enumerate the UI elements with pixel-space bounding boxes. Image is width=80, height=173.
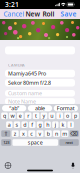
staticText: ⌫ bbox=[70, 131, 78, 137]
staticText: Sekor 80mm f/2.8 bbox=[8, 79, 51, 86]
button[interactable]: c bbox=[28, 130, 35, 137]
button[interactable]: b bbox=[45, 130, 52, 137]
staticText: Note Name bbox=[8, 98, 36, 105]
button[interactable]: 123 bbox=[1, 139, 11, 146]
staticText: q bbox=[3, 112, 6, 119]
staticText: x bbox=[22, 130, 25, 137]
button[interactable]: next bbox=[59, 139, 79, 146]
button[interactable]: r bbox=[25, 112, 31, 119]
button[interactable]: Note Name bbox=[5, 98, 75, 105]
staticText: Cancel bbox=[3, 10, 24, 18]
staticText: Custom name bbox=[8, 90, 42, 97]
staticText: able bbox=[35, 105, 45, 112]
staticText: o bbox=[66, 112, 69, 119]
button[interactable]: ⇧ bbox=[1, 130, 10, 137]
staticText: Save bbox=[60, 10, 76, 18]
button[interactable]: m bbox=[61, 130, 68, 137]
button[interactable]: Save bbox=[57, 9, 80, 19]
button[interactable]: u bbox=[48, 112, 55, 119]
button[interactable]: a bbox=[6, 121, 12, 128]
staticText: Mamiya645 Pro bbox=[8, 70, 46, 77]
staticText: k bbox=[61, 121, 64, 128]
button[interactable]: Sekor 80mm f/2.8 bbox=[5, 79, 75, 86]
staticText: 123 bbox=[3, 140, 9, 145]
button[interactable]: e bbox=[17, 112, 24, 119]
staticText: next bbox=[66, 140, 73, 145]
button[interactable]: f bbox=[29, 121, 35, 128]
button[interactable]: w bbox=[9, 112, 16, 119]
button[interactable]: n bbox=[53, 130, 60, 137]
button[interactable]: t bbox=[33, 112, 39, 119]
button[interactable]: l bbox=[67, 121, 74, 128]
button[interactable]: o bbox=[64, 112, 71, 119]
staticText: t bbox=[35, 112, 37, 119]
staticText: f bbox=[31, 121, 33, 128]
button[interactable]: q bbox=[1, 112, 8, 119]
staticText: i bbox=[59, 112, 60, 119]
button[interactable]: space bbox=[12, 139, 58, 146]
button[interactable]: i bbox=[56, 112, 63, 119]
button[interactable]: Switch keyboard bbox=[2, 159, 14, 171]
staticText: e bbox=[19, 112, 22, 119]
staticText: z bbox=[14, 130, 17, 137]
button[interactable]: k bbox=[60, 121, 66, 128]
staticText: space bbox=[28, 139, 43, 146]
button[interactable]: Dictate bbox=[68, 159, 78, 172]
button[interactable]: ⌫ bbox=[70, 130, 79, 137]
staticText: v bbox=[38, 130, 41, 137]
button[interactable]: “ab” bbox=[2, 105, 26, 111]
button[interactable]: Custom name bbox=[5, 90, 75, 96]
button[interactable]: s bbox=[14, 121, 20, 128]
button[interactable]: g bbox=[37, 121, 43, 128]
button[interactable]: x bbox=[20, 130, 27, 137]
button[interactable]: z bbox=[12, 130, 19, 137]
button[interactable]: p bbox=[72, 112, 79, 119]
button[interactable]: Mamiya645 Pro bbox=[5, 70, 75, 77]
staticText: r bbox=[27, 112, 29, 119]
button[interactable]: y bbox=[41, 112, 47, 119]
staticText: j bbox=[55, 121, 56, 128]
button[interactable]: h bbox=[44, 121, 51, 128]
staticText: a bbox=[8, 121, 11, 128]
staticText: CAMERA bbox=[8, 62, 25, 68]
staticText: c bbox=[30, 130, 33, 137]
staticText: y bbox=[42, 112, 45, 119]
staticText: s bbox=[15, 121, 18, 128]
button[interactable]: v bbox=[36, 130, 43, 137]
staticText: n bbox=[55, 130, 58, 137]
button[interactable]: able bbox=[28, 105, 52, 111]
staticText: ⇧ bbox=[4, 131, 8, 137]
staticText: g bbox=[38, 121, 41, 128]
staticText: m bbox=[62, 130, 67, 137]
button[interactable]: Format bbox=[54, 105, 78, 111]
staticText: w bbox=[10, 112, 14, 119]
staticText: h bbox=[46, 121, 49, 128]
staticText: 3:21 bbox=[5, 0, 19, 9]
staticText: u bbox=[50, 112, 53, 119]
staticText: d bbox=[23, 121, 26, 128]
button[interactable]: d bbox=[21, 121, 28, 128]
staticText: b bbox=[47, 130, 50, 137]
staticText: New Roll bbox=[25, 10, 54, 18]
staticText: p bbox=[74, 112, 77, 119]
button[interactable]: j bbox=[52, 121, 59, 128]
staticText: l bbox=[70, 121, 71, 128]
staticText: “ab” bbox=[9, 105, 19, 112]
button[interactable]: Cancel bbox=[0, 9, 28, 19]
staticText: Format bbox=[57, 105, 75, 112]
